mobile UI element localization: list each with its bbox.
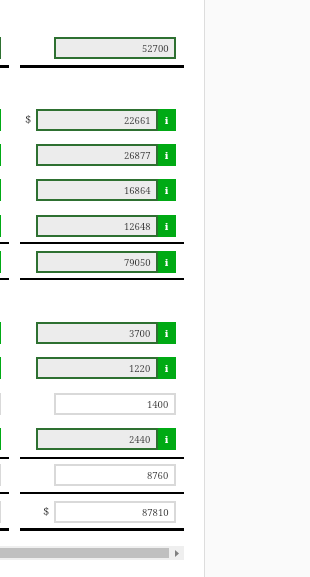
button[interactable]: 12648 [36,215,176,237]
staticText: $ [25,111,32,127]
button[interactable]: Information about 12648 [158,215,176,237]
button[interactable]: Information about 79050 [158,251,176,273]
staticText: i [165,220,169,232]
staticText: i [165,184,169,196]
staticText: 8760 [147,469,169,482]
staticText: 87810 [142,506,169,519]
staticText: 26877 [124,149,151,162]
staticText: i [165,114,169,126]
button[interactable]: 1400 [54,393,176,415]
staticText: i [165,433,169,445]
button[interactable]: 52700 [54,37,176,59]
button[interactable]: 26877 [36,144,176,166]
button[interactable]: 22661 [36,109,176,131]
staticText: i [165,256,169,268]
button[interactable]: 8760 [54,464,176,486]
staticText: 1220 [129,362,151,375]
staticText: 52700 [142,42,169,55]
staticText: 2440 [129,433,151,446]
staticText: i [165,149,169,161]
button[interactable]: Scroll right [169,546,184,560]
staticText: 1400 [147,398,169,411]
staticText: 3700 [129,327,151,340]
button[interactable]: 87810 [54,501,176,523]
staticText: i [165,362,169,374]
button[interactable]: 1220 [36,357,176,379]
button[interactable]: Information about 16864 [158,179,176,201]
button[interactable]: 3700 [36,322,176,344]
staticText: 79050 [124,256,151,269]
staticText: $ [43,503,50,519]
button[interactable]: 79050 [36,251,176,273]
button[interactable]: Information about 22661 [158,109,176,131]
button[interactable]: Information about 26877 [158,144,176,166]
button[interactable]: 16864 [36,179,176,201]
button[interactable]: 2440 [36,428,176,450]
button[interactable]: Information about 1220 [158,357,176,379]
button[interactable]: Information about 3700 [158,322,176,344]
staticText: 22661 [124,114,151,127]
staticText: 16864 [124,184,151,197]
staticText: i [165,327,169,339]
button[interactable]: Information about 2440 [158,428,176,450]
staticText: 12648 [124,220,151,233]
